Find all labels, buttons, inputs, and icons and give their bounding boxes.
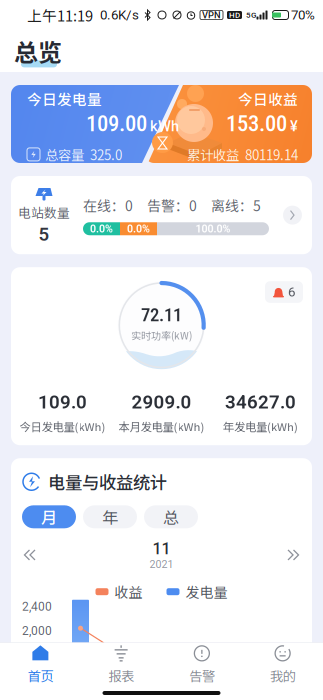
staticText: 累计收益 80119.14 bbox=[187, 145, 298, 164]
staticText: 年 bbox=[102, 505, 118, 528]
staticText: kWh bbox=[150, 118, 179, 135]
button[interactable]: 年 bbox=[83, 505, 137, 528]
staticText: 电量与收益统计 bbox=[48, 469, 167, 494]
staticText: 0.6K/s bbox=[100, 7, 139, 23]
staticText: 11 bbox=[152, 539, 170, 558]
staticText: 0.0% bbox=[127, 222, 150, 235]
staticText: 5 bbox=[38, 223, 49, 245]
staticText: 收益 bbox=[114, 582, 142, 602]
staticText: 153.00 bbox=[226, 110, 287, 137]
button[interactable]: 报表 bbox=[81, 643, 162, 686]
staticText: 0.0% bbox=[90, 222, 113, 235]
button[interactable]: 我的 bbox=[242, 643, 323, 686]
staticText: 总览 bbox=[14, 34, 62, 68]
staticText: 109.0 bbox=[38, 391, 87, 413]
staticText: VPN bbox=[202, 9, 221, 20]
button[interactable]: 告警 6 bbox=[265, 281, 303, 303]
staticText: 今日发电量(kWh) bbox=[19, 418, 105, 434]
staticText: 2021 bbox=[149, 558, 173, 571]
staticText: 100.0% bbox=[195, 222, 230, 235]
staticText: 年发电量(kWh) bbox=[223, 418, 298, 434]
staticText: 5G bbox=[246, 10, 256, 20]
staticText: 6 bbox=[288, 284, 295, 300]
staticText: 今日收益 bbox=[238, 88, 298, 109]
button[interactable]: 月 bbox=[22, 505, 76, 528]
staticText: ¥ bbox=[290, 118, 298, 135]
staticText: 总容量 325.0 bbox=[45, 145, 122, 164]
staticText: 实时功率(kW) bbox=[131, 328, 192, 342]
staticText: 报表 bbox=[108, 666, 134, 685]
staticText: 本月发电量(kWh) bbox=[118, 418, 204, 434]
button[interactable]: 总 bbox=[144, 505, 198, 528]
staticText: 首页 bbox=[27, 666, 53, 685]
staticText: 70% bbox=[291, 7, 315, 23]
button[interactable]: 首页 bbox=[0, 643, 81, 686]
staticText: 34627.0 bbox=[225, 391, 296, 413]
staticText: 今日发电量 bbox=[27, 88, 102, 109]
staticText: 2909.0 bbox=[131, 391, 191, 413]
button[interactable]: 查看电站 bbox=[283, 206, 302, 225]
staticText: HD bbox=[229, 10, 240, 20]
staticText: 72.11 bbox=[141, 304, 182, 326]
staticText: 告警 bbox=[189, 666, 215, 685]
button[interactable]: 上一月 bbox=[22, 548, 38, 562]
staticText: 在线：0 bbox=[83, 195, 133, 215]
staticText: 发电量 bbox=[185, 582, 227, 602]
staticText: 告警：0 bbox=[147, 195, 197, 215]
staticText: 2,400 bbox=[22, 600, 52, 614]
staticText: 我的 bbox=[270, 666, 296, 685]
staticText: 离线：5 bbox=[211, 195, 261, 215]
staticText: 1,200 bbox=[22, 672, 52, 686]
button[interactable]: 下一月 bbox=[285, 548, 301, 562]
button[interactable]: 告警 bbox=[161, 643, 242, 686]
staticText: 1,600 bbox=[22, 648, 52, 662]
staticText: 109.00 bbox=[86, 110, 147, 137]
staticText: 总 bbox=[163, 505, 179, 528]
staticText: 2,000 bbox=[22, 624, 52, 638]
staticText: 上午11:19 bbox=[27, 4, 93, 26]
staticText: 月 bbox=[41, 505, 57, 528]
staticText: 电站数量 bbox=[18, 203, 70, 221]
